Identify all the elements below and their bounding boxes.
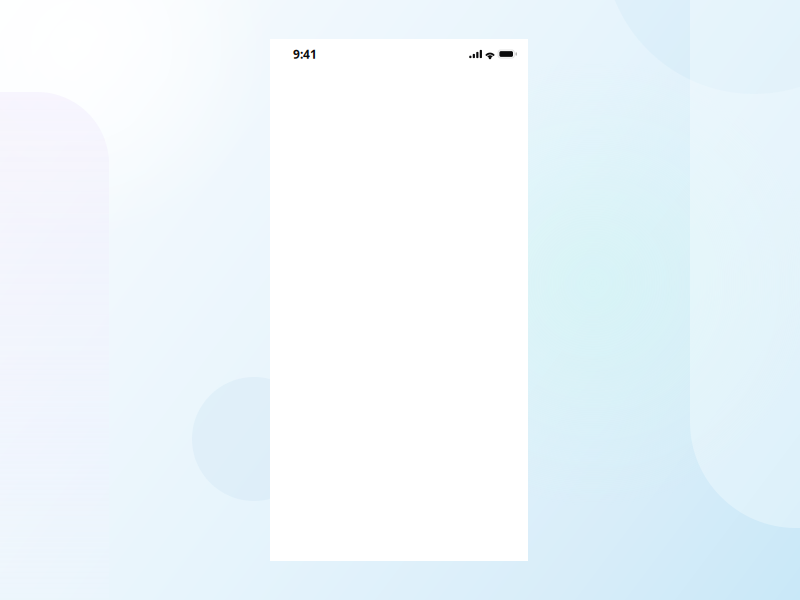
staticText: 9:41 [293, 46, 317, 62]
